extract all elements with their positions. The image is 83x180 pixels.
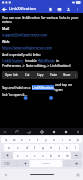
staticText: b (50, 154, 52, 158)
button[interactable]: Back (0, 5, 9, 13)
button[interactable]: f (31, 144, 39, 151)
button[interactable]: p (74, 136, 82, 143)
button[interactable]: Share (60, 71, 73, 79)
staticText: x (26, 154, 28, 158)
button[interactable]: Voice input (75, 129, 81, 135)
button[interactable]: q (1, 136, 10, 143)
staticText: a (8, 146, 10, 150)
staticText: . (67, 162, 68, 166)
button[interactable]: x (22, 152, 31, 159)
button[interactable]: Keyboard switcher (2, 129, 8, 135)
button[interactable]: Home (30, 174, 54, 175)
button[interactable]: z (13, 152, 22, 159)
button[interactable]: a (4, 144, 13, 151)
button[interactable]: c (31, 152, 39, 159)
staticText: w (13, 138, 16, 142)
button[interactable]: Open Link (2, 71, 21, 79)
staticText: e (21, 138, 23, 142)
staticText: k (66, 146, 68, 150)
staticText: And especially wiki links: (2, 52, 41, 57)
staticText: s (17, 146, 19, 150)
button[interactable]: Preview (55, 5, 64, 13)
staticText: j (59, 146, 60, 150)
button[interactable]: Shift (1, 152, 13, 159)
staticText: Mail (2, 26, 10, 31)
button[interactable]: u (50, 136, 58, 143)
staticText: Tap and hold on a (2, 85, 32, 90)
button[interactable]: Bookmark (46, 5, 55, 13)
staticText: Paste (50, 73, 57, 77)
staticText: Copy (37, 73, 44, 77)
staticText: l (75, 146, 76, 150)
button[interactable]: Sticker (63, 129, 69, 135)
button[interactable]: h (47, 144, 55, 151)
button[interactable]: Settings (51, 129, 57, 135)
button[interactable]: r (26, 136, 34, 143)
button[interactable]: Copy (34, 71, 47, 79)
button[interactable]: l (71, 144, 79, 151)
staticText: LinkXification (2, 58, 24, 63)
button[interactable]: support@softxperience.com (2, 32, 48, 37)
button[interactable]: y (42, 136, 50, 143)
button[interactable]: Enter (71, 160, 82, 167)
staticText: r (29, 138, 31, 142)
button[interactable]: ?123 (1, 160, 13, 167)
button[interactable]: Translate (39, 129, 45, 135)
button[interactable]: s (13, 144, 22, 151)
staticText: Web (2, 39, 10, 44)
staticText: Preferences -> Note editing -> Linkifica… (2, 63, 71, 68)
staticText: WikiWords (38, 58, 55, 63)
button[interactable]: Recents (75, 172, 80, 177)
staticText: https://www.softxperience.com (2, 45, 52, 50)
button[interactable]: More (73, 71, 78, 79)
staticText: n (58, 154, 60, 158)
button[interactable]: j (55, 144, 63, 151)
button[interactable]: Back (3, 172, 8, 177)
staticText: English (42, 162, 50, 165)
staticText: and tap on 'open (54, 82, 81, 92)
staticText: , (17, 162, 18, 166)
button[interactable]: w (10, 136, 18, 143)
staticText: v (42, 154, 44, 158)
staticText: support@softxperience.com (2, 32, 48, 37)
staticText: Open Link (5, 73, 18, 77)
button[interactable]: More options (73, 5, 82, 13)
staticText: z (17, 154, 19, 158)
button[interactable]: k (63, 144, 71, 151)
staticText: p (77, 138, 79, 142)
staticText: t (37, 138, 39, 142)
button[interactable]: , (13, 160, 21, 167)
button[interactable]: d (22, 144, 31, 151)
staticText: h (50, 146, 52, 150)
button[interactable]: o (66, 136, 74, 143)
button[interactable]: Emoji (21, 160, 29, 167)
button[interactable]: English (30, 160, 62, 167)
button[interactable]: v (39, 152, 47, 159)
button[interactable]: Backspace (71, 152, 82, 159)
button[interactable]: Cut (21, 71, 34, 79)
button[interactable]: b (47, 152, 55, 159)
staticText: u (53, 138, 55, 142)
button[interactable]: https://www.softxperience.com (2, 45, 52, 50)
staticText: Share (63, 73, 71, 77)
button[interactable]: Paste (47, 71, 60, 79)
button[interactable]: n (55, 152, 63, 159)
button[interactable]: Undo (14, 129, 20, 135)
staticText: You can use linkification for various li… (2, 15, 81, 24)
staticText: (enable (24, 58, 38, 63)
staticText: c (34, 154, 36, 158)
button[interactable]: e (18, 136, 26, 143)
button[interactable]: g (39, 144, 47, 151)
button[interactable]: m (63, 152, 71, 159)
staticText: y (45, 138, 47, 142)
staticText: f (34, 146, 36, 150)
staticText: link' to open it... (2, 92, 28, 97)
staticText: ?123 (4, 162, 10, 166)
button[interactable]: t (34, 136, 42, 143)
staticText: m (66, 154, 69, 158)
button[interactable]: Account (64, 5, 73, 13)
button[interactable]: i (58, 136, 66, 143)
button[interactable]: Redo (26, 129, 32, 135)
staticText: in (55, 58, 59, 63)
